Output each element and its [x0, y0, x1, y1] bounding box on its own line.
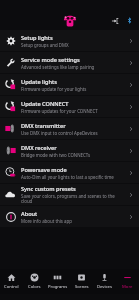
button[interactable]: Log in: [108, 14, 121, 27]
staticText: Update lights: [21, 78, 57, 86]
staticText: Update CONNECT: [21, 100, 69, 108]
button[interactable]: More: [116, 269, 139, 294]
staticText: Sync custom presets: [21, 185, 76, 193]
button[interactable]: DMX transmitter: [0, 118, 139, 139]
button[interactable]: Setup lights: [0, 30, 139, 51]
button[interactable]: Bluetooth: [123, 14, 136, 27]
staticText: More info about this app: [21, 218, 72, 224]
button[interactable]: Update CONNECT: [0, 96, 139, 117]
button[interactable]: Devices: [93, 269, 116, 294]
button[interactable]: DMX receiver: [0, 140, 139, 161]
staticText: Colors: [28, 284, 41, 290]
staticText: Devices: [97, 284, 112, 290]
staticText: About: [21, 210, 38, 218]
staticText: More: [122, 284, 133, 290]
staticText: Advanced settings like lamp pairing: [21, 64, 95, 70]
button[interactable]: Programs: [46, 269, 69, 294]
staticText: Service mode settings: [21, 56, 80, 64]
staticText: Save your colors, programs and scenes to…: [21, 193, 125, 205]
staticText: Powersave mode: [21, 166, 67, 174]
staticText: DMX receiver: [21, 144, 57, 152]
staticText: Setup lights: [21, 34, 53, 42]
staticText: Setup groups and DMX: [21, 42, 69, 48]
button[interactable]: Logo: [63, 13, 77, 27]
staticText: Control: [4, 284, 19, 290]
staticText: Scenes: [75, 284, 89, 290]
staticText: Bridge mode with two CONNECTs: [21, 152, 91, 158]
staticText: Auto-Dim all your lights to last a speci…: [21, 174, 114, 180]
staticText: DMX transmitter: [21, 122, 66, 130]
button[interactable]: Scenes: [70, 269, 93, 294]
staticText: Programs: [48, 284, 68, 290]
staticText: Firmware updates for your CONNECT: [21, 108, 98, 114]
button[interactable]: Update lights: [0, 74, 139, 95]
button[interactable]: Sync custom presets: [0, 184, 139, 205]
button[interactable]: About: [0, 206, 139, 227]
button[interactable]: Control: [0, 269, 23, 294]
staticText: Use DMX input to control ApeDevices: [21, 130, 98, 136]
button[interactable]: Service mode settings: [0, 52, 139, 73]
staticText: Firmware update for your lights: [21, 86, 87, 92]
button[interactable]: Colors: [23, 269, 46, 294]
button[interactable]: Powersave mode: [0, 162, 139, 183]
